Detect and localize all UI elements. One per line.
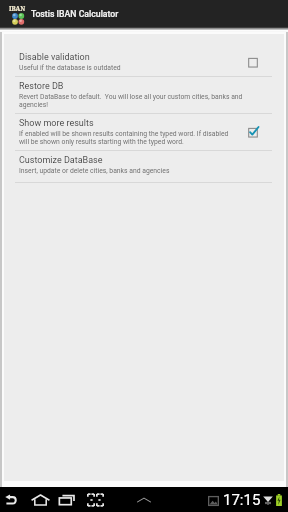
button[interactable]: Back	[5, 494, 19, 506]
staticText: IBAN	[9, 4, 26, 12]
staticText: Tostis IBAN Calculator	[31, 9, 119, 19]
staticText: If enabled will be shown results contain…	[19, 130, 229, 138]
button[interactable]: Disable validation	[4, 48, 284, 76]
staticText: 17:15	[223, 491, 261, 509]
button[interactable]: Enabled	[243, 122, 263, 142]
staticText: Show more results	[19, 118, 94, 129]
button[interactable]: Restore DB	[4, 77, 284, 113]
staticText: Useful if the database is outdated	[19, 64, 121, 72]
button[interactable]: Home	[31, 494, 50, 506]
staticText: Insert, update or delete cities, banks a…	[19, 167, 170, 175]
staticText: Customize DataBase	[19, 155, 103, 166]
button[interactable]: Show more results	[4, 114, 284, 150]
staticText: agencies!	[19, 101, 48, 109]
staticText: Disable validation	[19, 52, 90, 63]
button[interactable]: Recent apps	[58, 493, 75, 506]
button[interactable]: Disabled	[243, 52, 263, 72]
staticText: Revert DataBase to default. You will los…	[19, 93, 243, 101]
button[interactable]: Screenshot	[87, 493, 104, 507]
button[interactable]: Customize DataBase	[4, 151, 284, 182]
staticText: will be shown only results starting with…	[19, 138, 184, 146]
staticText: Restore DB	[19, 81, 64, 92]
button[interactable]: Show menu	[137, 497, 151, 503]
